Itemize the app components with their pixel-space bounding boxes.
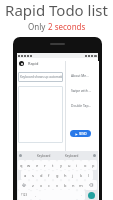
button[interactable]: l xyxy=(85,170,93,180)
staticText: k xyxy=(80,173,83,178)
staticText: c xyxy=(48,183,50,188)
staticText: g xyxy=(56,173,59,178)
button[interactable]: k xyxy=(77,170,85,180)
button[interactable]: ?123 xyxy=(18,190,31,200)
staticText: i xyxy=(76,163,78,168)
staticText: w xyxy=(27,163,31,168)
staticText: e xyxy=(36,163,39,168)
staticText: q xyxy=(20,163,23,168)
button[interactable]: Shift xyxy=(18,180,29,190)
button[interactable]: d xyxy=(37,170,45,180)
staticText: y xyxy=(60,163,63,168)
button[interactable]: Backspace xyxy=(85,180,97,190)
staticText: n xyxy=(72,183,75,188)
button[interactable]: Account xyxy=(19,61,24,66)
button[interactable]: f xyxy=(45,170,53,180)
button[interactable]: Keyboard shows up automatically xyxy=(18,72,63,82)
staticText: s xyxy=(32,173,34,178)
button[interactable]: q xyxy=(18,160,25,170)
button[interactable]: b xyxy=(61,180,69,190)
staticText: r xyxy=(44,163,46,168)
button[interactable]: p xyxy=(89,160,97,170)
button[interactable]: o xyxy=(81,160,89,170)
staticText: m xyxy=(79,183,83,188)
staticText: Keyboard xyxy=(37,154,51,158)
button[interactable] xyxy=(18,86,63,143)
staticText: Only xyxy=(28,21,48,32)
staticText: h xyxy=(64,173,67,178)
button[interactable]: m xyxy=(77,180,85,190)
button[interactable]: , xyxy=(31,190,40,200)
staticText: , xyxy=(35,193,36,197)
button[interactable]: e xyxy=(33,160,41,170)
staticText: v xyxy=(56,183,59,188)
staticText: Double Tap... xyxy=(71,103,92,107)
staticText: b xyxy=(64,183,67,188)
button[interactable]: r xyxy=(41,160,49,170)
button[interactable]: j xyxy=(69,170,77,180)
button[interactable]: Double Tap... xyxy=(65,97,99,112)
staticText: a xyxy=(24,173,27,178)
staticText: ?123 xyxy=(21,193,28,197)
button[interactable]: z xyxy=(29,180,37,190)
button[interactable]: w xyxy=(25,160,33,170)
button[interactable]: g xyxy=(53,170,61,180)
button[interactable]: More xyxy=(93,154,96,157)
staticText: t xyxy=(52,163,54,168)
button[interactable]: u xyxy=(65,160,73,170)
staticText: SEND xyxy=(79,132,87,136)
staticText: u xyxy=(68,163,71,168)
staticText: . xyxy=(81,193,82,197)
staticText: p xyxy=(92,163,95,168)
staticText: Keyboard shows up automatically xyxy=(20,75,63,79)
button[interactable]: i xyxy=(73,160,81,170)
button[interactable]: x xyxy=(37,180,45,190)
staticText: j xyxy=(72,173,74,178)
button[interactable]: Swipe with ... xyxy=(65,82,99,97)
button[interactable]: t xyxy=(49,160,57,170)
staticText: f xyxy=(48,173,50,178)
staticText: Keyboard xyxy=(65,154,79,158)
staticText: Rapid Todo list xyxy=(5,0,108,20)
button[interactable]: SEND xyxy=(70,130,91,137)
staticText: About Me... xyxy=(71,73,89,77)
button[interactable]: n xyxy=(69,180,77,190)
staticText: l xyxy=(88,173,90,178)
staticText: Swipe with ... xyxy=(71,88,92,92)
button[interactable]: a xyxy=(21,170,29,180)
staticText: z xyxy=(32,183,34,188)
button[interactable]: Enter xyxy=(88,192,95,199)
button[interactable]: y xyxy=(57,160,65,170)
staticText: Rapid xyxy=(28,61,39,66)
staticText: 2 seconds xyxy=(48,21,86,32)
button[interactable]: c xyxy=(45,180,53,190)
staticText: o xyxy=(84,163,87,168)
button[interactable]: About Me... xyxy=(65,67,99,82)
button[interactable]: h xyxy=(61,170,69,180)
staticText: d xyxy=(40,173,43,178)
button[interactable]: s xyxy=(29,170,37,180)
staticText: x xyxy=(40,183,43,188)
button[interactable]: v xyxy=(53,180,61,190)
button[interactable]: Emoji xyxy=(19,154,22,157)
